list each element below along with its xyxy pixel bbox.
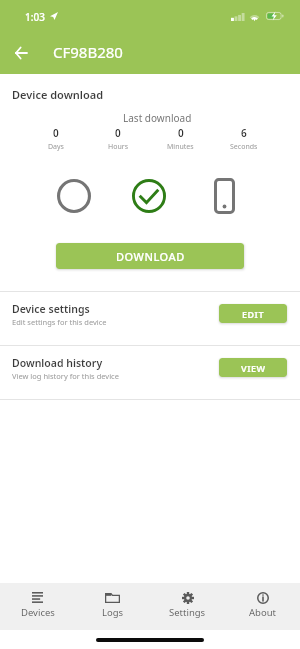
staticText: Seconds [230,142,258,152]
staticText: 0 [53,126,59,140]
staticText: 1:03 [25,10,45,24]
staticText: Days [48,142,64,152]
button[interactable]: EDIT [219,304,287,323]
button[interactable]: Device settings [0,291,300,345]
staticText: Device settings [12,302,90,316]
staticText: Logs [102,606,124,619]
staticText: 0 [178,126,184,140]
button[interactable]: Logs [75,583,150,630]
staticText: Settings [169,606,206,619]
staticText: EDIT [242,308,265,320]
staticText: VIEW [241,362,266,374]
staticText: Last download [123,111,192,125]
staticText: Hours [108,142,128,152]
staticText: About [249,606,276,619]
button[interactable]: Back [3,35,39,71]
button[interactable]: About [225,583,300,630]
button[interactable]: DOWNLOAD [56,243,244,269]
button[interactable]: Download history [0,345,300,399]
staticText: CF98B280 [53,42,123,62]
staticText: 6 [241,126,247,140]
staticText: View log history for this device [12,371,119,381]
staticText: Download history [12,356,103,370]
button[interactable]: Devices [0,583,75,630]
staticText: Minutes [167,142,194,152]
button[interactable]: VIEW [219,358,287,377]
staticText: 0 [115,126,121,140]
staticText: Device download [12,87,104,102]
button[interactable]: Settings [150,583,225,630]
staticText: Edit settings for this device [12,317,107,327]
staticText: DOWNLOAD [116,249,185,264]
staticText: Devices [21,606,55,619]
